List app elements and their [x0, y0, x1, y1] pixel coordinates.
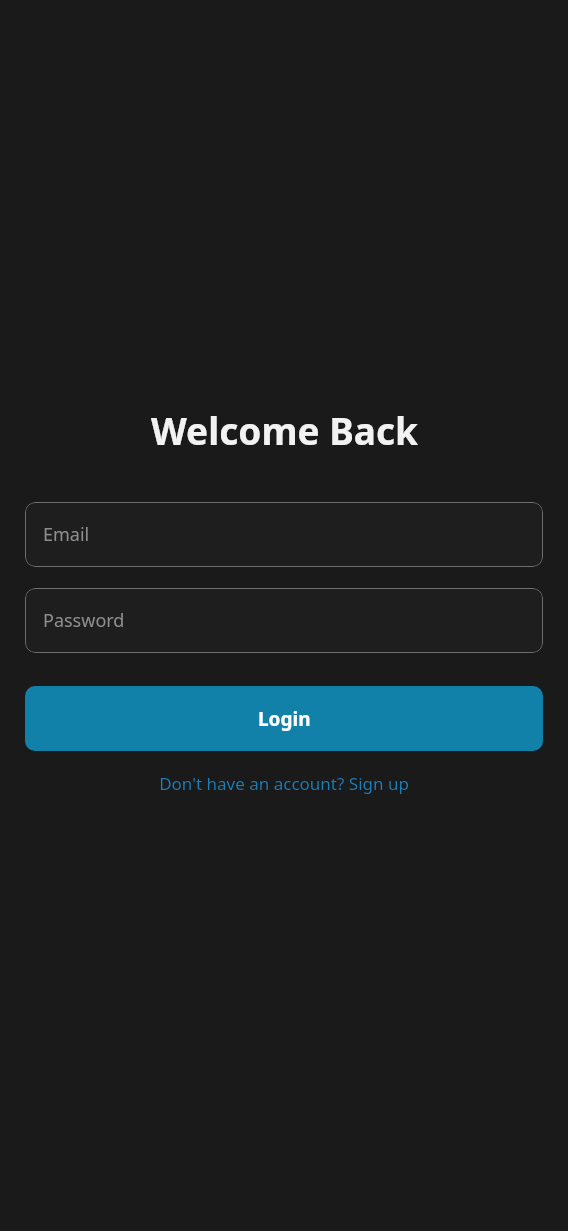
staticText: Login [258, 706, 311, 732]
staticText: Welcome Back [151, 405, 418, 455]
staticText: Don't have an account? Sign up [159, 772, 409, 795]
staticText: Password [43, 608, 125, 633]
staticText: Email [43, 522, 90, 547]
button[interactable]: Password [25, 588, 543, 653]
button[interactable]: Don't have an account? Sign up [25, 765, 543, 801]
button[interactable]: Email [25, 502, 543, 567]
button[interactable]: Login [25, 686, 543, 751]
